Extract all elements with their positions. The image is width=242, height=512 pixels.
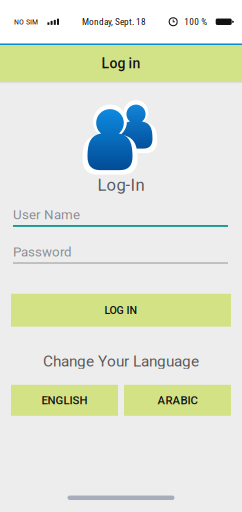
staticText: ARABIC	[157, 394, 197, 407]
button[interactable]: ENGLISH	[11, 385, 118, 416]
staticText: 100 %	[184, 16, 207, 27]
staticText: LOG IN	[104, 304, 137, 316]
button[interactable]: Log in	[0, 45, 242, 82]
button[interactable]: ARABIC	[124, 385, 231, 416]
staticText: Password	[13, 244, 72, 260]
button[interactable]: LOG IN	[11, 294, 231, 327]
staticText: Monday, Sept. 18	[82, 16, 146, 27]
staticText: Log in	[101, 55, 140, 72]
staticText: NO SIM	[14, 17, 38, 26]
staticText: Change Your Language	[43, 352, 199, 370]
staticText: ENGLISH	[41, 394, 87, 407]
staticText: User Name	[13, 207, 80, 222]
staticText: Log-In	[97, 175, 144, 195]
